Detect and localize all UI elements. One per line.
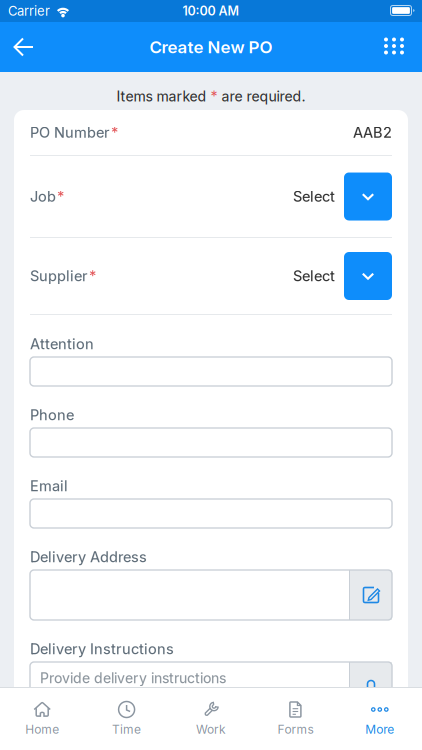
staticText: Email <box>30 477 68 494</box>
button[interactable] <box>384 22 422 72</box>
staticText: Provide delivery instructions <box>40 670 226 686</box>
staticText: Select <box>293 267 335 284</box>
staticText: are required. <box>217 88 305 105</box>
staticText: * <box>57 188 64 205</box>
staticText: Supplier <box>30 267 88 284</box>
staticText: Time <box>112 722 141 737</box>
staticText: * <box>89 267 96 284</box>
staticText: PO Number <box>30 124 110 141</box>
staticText: * <box>210 88 217 105</box>
staticText: Attention <box>30 335 94 352</box>
staticText: 10:00 AM <box>182 4 239 18</box>
staticText: Delivery Address <box>30 548 147 565</box>
staticText: Work <box>196 722 226 737</box>
staticText: Forms <box>277 722 313 737</box>
button[interactable]: Forms <box>253 686 338 750</box>
button[interactable] <box>350 662 392 724</box>
staticText: Carrier <box>8 3 50 19</box>
staticText: Items marked <box>116 88 210 105</box>
button[interactable] <box>0 22 36 72</box>
staticText: Delivery Instructions <box>30 640 174 657</box>
button[interactable] <box>350 570 392 620</box>
button[interactable]: Work <box>169 686 253 750</box>
button[interactable] <box>344 252 392 300</box>
button[interactable]: More <box>338 686 422 750</box>
button[interactable]: Time <box>84 686 169 750</box>
staticText: Home <box>25 722 59 737</box>
staticText: * <box>111 124 118 141</box>
staticText: Phone <box>30 406 74 423</box>
button[interactable]: Home <box>0 686 84 750</box>
button[interactable] <box>344 172 392 220</box>
staticText: Job <box>30 188 56 205</box>
staticText: Select <box>293 188 335 205</box>
staticText: Create New PO <box>149 37 272 57</box>
staticText: More <box>365 722 394 737</box>
staticText: AAB2 <box>353 124 392 141</box>
